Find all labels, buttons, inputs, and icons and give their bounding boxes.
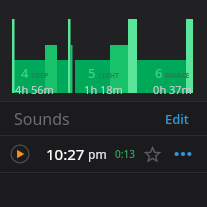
staticText: pm [88, 146, 107, 162]
staticText: 5 [88, 64, 96, 82]
staticText: Edit [165, 110, 189, 128]
staticText: DEEP [31, 71, 49, 81]
staticText: 4h 56m [15, 82, 54, 97]
staticText: 1h 18m [84, 82, 123, 97]
staticText: 4 [21, 64, 29, 82]
button[interactable]: 4 [0, 62, 69, 99]
button[interactable]: 5 [69, 62, 138, 99]
button[interactable]: Sleep stages chart [0, 0, 207, 101]
staticText: 10:27 [46, 144, 85, 164]
staticText: AWAKE [165, 71, 190, 81]
button[interactable]: Play recording [10, 144, 30, 164]
button[interactable]: Favourite [141, 143, 163, 165]
button[interactable]: Edit [161, 106, 193, 132]
staticText: Sounds [14, 108, 70, 130]
button[interactable]: More options [171, 142, 195, 166]
staticText: 6 [155, 64, 163, 82]
staticText: 0:13 [115, 147, 135, 161]
button[interactable]: 6 [138, 62, 207, 99]
button[interactable]: Play recording [0, 136, 207, 172]
staticText: LIGHT [98, 71, 120, 81]
staticText: 0h 37m [153, 82, 192, 97]
